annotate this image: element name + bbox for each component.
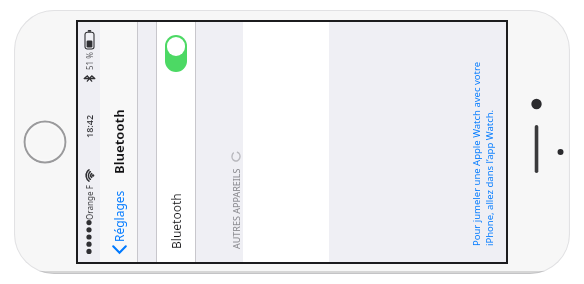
- staticText: Bluetooth: [168, 193, 184, 249]
- button[interactable]: Bluetooth: [157, 22, 195, 262]
- staticText: Pour jumeler une Apple Watch avec votre …: [470, 38, 496, 246]
- staticText: Bluetooth: [110, 109, 128, 174]
- button[interactable]: Bluetooth on: [165, 35, 187, 72]
- staticText: AUTRES APPAREILS: [230, 168, 242, 249]
- staticText: 18:42: [83, 114, 95, 138]
- button[interactable]: Réglages: [107, 187, 131, 257]
- staticText: 51 %: [84, 52, 95, 70]
- staticText: Réglages: [111, 190, 127, 242]
- staticText: Orange F: [84, 185, 95, 220]
- button[interactable]: Home: [23, 120, 67, 164]
